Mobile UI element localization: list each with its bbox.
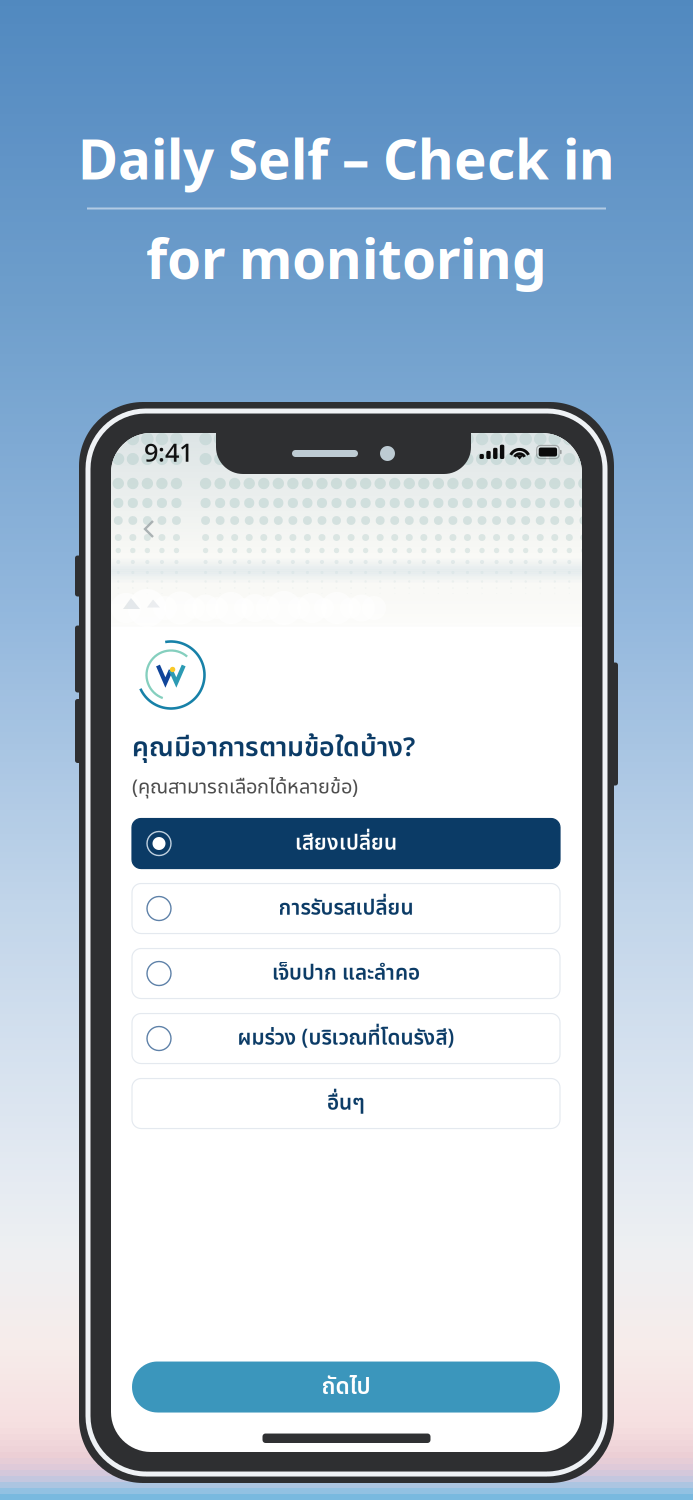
staticText: คุณมีอาการตามข้อใดบ้าง? [132, 728, 415, 768]
staticText: เจ็บปาก และลำคอ [272, 958, 420, 989]
staticText: ผมร่วง (บริเวณที่โดนรังสี) [237, 1023, 454, 1054]
button[interactable]: ถัดไป [132, 1361, 560, 1412]
staticText: for monitoring [146, 221, 547, 294]
button[interactable]: อื่นๆ [132, 1078, 560, 1128]
staticText: Daily Self – Check in [78, 122, 615, 194]
staticText: (คุณสามารถเลือกได้หลายข้อ) [132, 772, 358, 802]
staticText: อื่นๆ [327, 1088, 365, 1119]
button[interactable]: ผมร่วง (บริเวณที่โดนรังสี) [132, 1013, 560, 1063]
staticText: 9:41 [144, 435, 193, 469]
button[interactable]: เสียงเปลี่ยน [132, 818, 560, 868]
staticText: การรับรสเปลี่ยน [278, 893, 413, 924]
staticText: เสียงเปลี่ยน [295, 828, 397, 859]
button[interactable]: เจ็บปาก และลำคอ [132, 948, 560, 998]
staticText: ถัดไป [321, 1370, 370, 1404]
button[interactable]: Back [132, 509, 168, 549]
button[interactable]: การรับรสเปลี่ยน [132, 883, 560, 933]
